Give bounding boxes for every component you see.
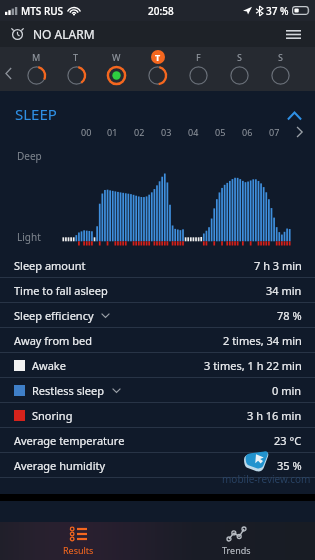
button[interactable]: Time to fall asleep	[0, 278, 315, 303]
staticText: Away from bed	[14, 333, 92, 348]
staticText: F	[196, 51, 201, 63]
staticText: 06	[242, 126, 253, 138]
staticText: 3 times, 1 h 22 min	[204, 358, 302, 373]
button[interactable]: S	[219, 47, 260, 91]
staticText: S	[278, 51, 283, 63]
staticText: T	[73, 51, 79, 63]
button[interactable]: Snoring	[0, 403, 315, 428]
button[interactable]: T	[56, 47, 96, 91]
staticText: M	[32, 51, 41, 63]
staticText: Results	[63, 544, 94, 556]
staticText: 02	[134, 126, 145, 138]
button[interactable]: M	[16, 47, 56, 91]
button[interactable]: Awake	[0, 353, 315, 378]
staticText: Awake	[32, 358, 66, 373]
staticText: NO ALARM	[33, 26, 95, 42]
button[interactable]: F	[178, 47, 219, 91]
button[interactable]: Menu	[281, 22, 305, 46]
button[interactable]: Results	[0, 522, 157, 560]
staticText: Light	[17, 230, 41, 244]
staticText: Average humidity	[14, 458, 106, 473]
staticText: Deep	[17, 149, 42, 163]
button[interactable]: Sleep amount	[0, 253, 315, 278]
staticText: 20:58	[148, 4, 174, 18]
staticText: Trends	[222, 544, 251, 556]
staticText: 78 %	[277, 308, 302, 323]
staticText: 00	[81, 126, 92, 138]
button[interactable]: Previous week	[0, 47, 16, 91]
button[interactable]: Sleep efficiency	[0, 303, 315, 328]
staticText: 03	[161, 126, 172, 138]
staticText: W	[112, 51, 121, 63]
staticText: 05	[215, 126, 226, 138]
staticText: 35 %	[277, 458, 302, 473]
staticText: 04	[188, 126, 199, 138]
button[interactable]: Next	[288, 123, 310, 141]
staticText: Snoring	[32, 408, 73, 423]
staticText: 7 h 3 min	[254, 258, 302, 273]
staticText: 01	[107, 126, 118, 138]
staticText: Restless sleep	[32, 383, 105, 398]
staticText: 3 h 16 min	[247, 408, 302, 423]
button[interactable]: Restless sleep	[0, 378, 315, 403]
staticText: 34 min	[266, 283, 302, 298]
button[interactable]: W	[96, 47, 137, 91]
button[interactable]: S	[260, 47, 301, 91]
staticText: S	[237, 51, 242, 63]
staticText: 2 times, 34 min	[223, 333, 302, 348]
staticText: Average temperature	[14, 433, 125, 448]
button[interactable]: Trends	[157, 522, 315, 560]
staticText: mobile-review.com	[222, 472, 311, 486]
staticText: Sleep amount	[14, 258, 86, 273]
button[interactable]: T	[137, 47, 178, 91]
staticText: T	[155, 51, 161, 63]
staticText: 23 °C	[274, 433, 302, 448]
staticText: SLEEP	[15, 104, 57, 123]
staticText: 0 min	[272, 383, 302, 398]
button[interactable]: Average temperature	[0, 428, 315, 453]
staticText: MTS RUS	[21, 4, 64, 18]
staticText: Sleep efficiency	[14, 308, 94, 323]
staticText: 07	[269, 126, 280, 138]
button[interactable]: Average humidity	[0, 453, 315, 478]
staticText: 37 %	[266, 4, 289, 18]
button[interactable]: SLEEP	[0, 91, 315, 123]
button[interactable]: Away from bed	[0, 328, 315, 353]
staticText: Time to fall asleep	[14, 283, 108, 298]
